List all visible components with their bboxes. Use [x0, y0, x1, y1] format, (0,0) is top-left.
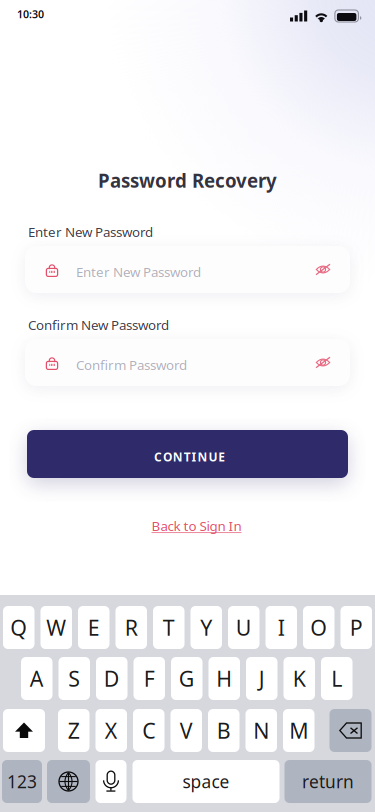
staticText: Y [200, 613, 212, 642]
staticText: Z [68, 716, 80, 745]
button[interactable]: C [27, 430, 348, 478]
staticText: Enter New Password [28, 223, 153, 241]
button[interactable]: O [303, 606, 334, 649]
staticText: K [293, 664, 306, 693]
button[interactable]: U [228, 606, 259, 649]
button[interactable]: L [321, 657, 352, 700]
staticText: I [192, 449, 197, 465]
staticText: F [144, 664, 155, 693]
button[interactable]: return [284, 760, 371, 803]
staticText: A [30, 664, 44, 693]
button[interactable]: Show password [300, 246, 346, 293]
button[interactable]: I [265, 606, 297, 649]
button[interactable]: Next keyboard [47, 760, 90, 803]
staticText: W [46, 613, 66, 642]
staticText: Q [10, 613, 27, 642]
button[interactable]: Dictation [95, 760, 126, 803]
staticText: U [236, 613, 252, 642]
staticText: N [197, 449, 207, 465]
staticText: C [142, 716, 155, 745]
button[interactable]: T [153, 606, 184, 649]
button[interactable]: S [58, 657, 90, 700]
staticText: V [180, 716, 193, 745]
staticText: 123 [7, 770, 37, 793]
staticText: Enter New Password [76, 263, 201, 281]
staticText: P [350, 613, 363, 642]
button[interactable]: M [283, 709, 314, 752]
staticText: N [253, 716, 269, 745]
staticText: C [154, 449, 162, 465]
button[interactable]: Q [3, 606, 34, 649]
staticText: U [208, 449, 217, 465]
button[interactable]: Back to Sign In [148, 514, 244, 538]
button[interactable]: E [78, 606, 109, 649]
button[interactable]: Show password [300, 339, 346, 386]
staticText: M [289, 716, 308, 745]
button[interactable]: X [95, 709, 127, 752]
staticText: N [173, 449, 183, 465]
button[interactable]: D [96, 657, 127, 700]
button[interactable]: V [170, 709, 202, 752]
staticText: return [302, 770, 354, 793]
button[interactable]: G [171, 657, 202, 700]
button[interactable]: space [132, 760, 279, 803]
staticText: Back to Sign In [151, 517, 241, 535]
staticText: X [105, 716, 118, 745]
button[interactable]: J [246, 657, 277, 700]
staticText: H [216, 664, 232, 693]
button[interactable]: W [40, 606, 72, 649]
staticText: 10:30 [17, 7, 44, 21]
staticText: space [182, 770, 229, 793]
button[interactable]: H [208, 657, 240, 700]
staticText: T [184, 449, 191, 465]
button[interactable]: B [208, 709, 239, 752]
button[interactable]: Y [190, 606, 222, 649]
button[interactable]: A [21, 657, 52, 700]
staticText: B [217, 716, 231, 745]
staticText: E [218, 449, 225, 465]
button[interactable]: R [115, 606, 147, 649]
staticText: D [104, 664, 120, 693]
button[interactable]: Delete [329, 709, 371, 752]
staticText: R [125, 613, 138, 642]
button[interactable]: F [133, 657, 165, 700]
staticText: O [310, 613, 327, 642]
staticText: G [179, 664, 195, 693]
button[interactable]: K [283, 657, 315, 700]
staticText: J [259, 664, 265, 693]
staticText: Password Recovery [98, 168, 277, 193]
button[interactable]: C [133, 709, 164, 752]
staticText: O [163, 449, 172, 465]
button[interactable]: Z [58, 709, 89, 752]
button[interactable]: P [340, 606, 372, 649]
staticText: L [331, 664, 342, 693]
button[interactable]: 123 [2, 760, 42, 803]
staticText: T [163, 613, 175, 642]
button[interactable]: N [245, 709, 277, 752]
staticText: S [68, 664, 80, 693]
staticText: Confirm New Password [28, 316, 169, 334]
staticText: E [88, 613, 100, 642]
button[interactable]: Shift [3, 709, 45, 752]
staticText: Confirm Password [76, 356, 187, 374]
staticText: I [278, 613, 285, 642]
